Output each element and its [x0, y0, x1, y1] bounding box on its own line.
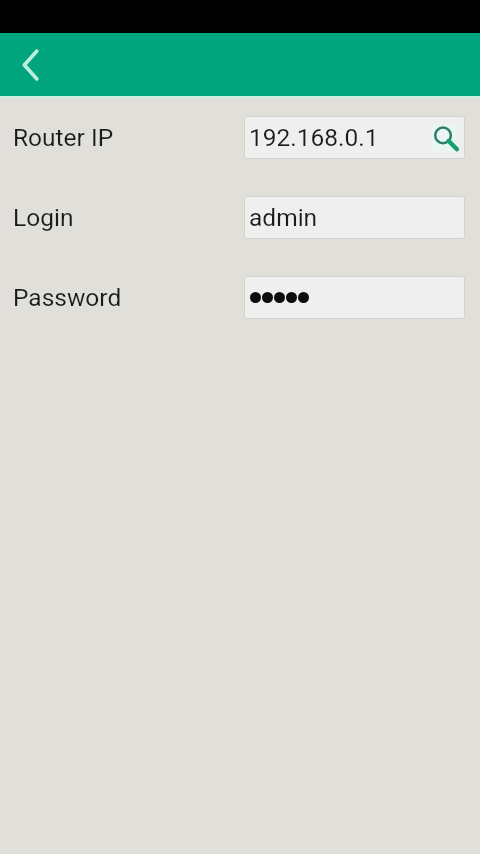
staticText: 192.168.0.1: [249, 123, 379, 152]
staticText: Password: [13, 283, 122, 312]
button[interactable]: Search: [428, 122, 460, 154]
button[interactable]: Back: [0, 33, 56, 96]
staticText: Login: [13, 203, 74, 232]
button[interactable]: admin: [245, 197, 464, 238]
staticText: admin: [249, 203, 318, 232]
button[interactable]: 192.168.0.1: [245, 117, 464, 158]
button[interactable]: Password field: [245, 277, 464, 318]
staticText: Router IP: [13, 123, 114, 152]
